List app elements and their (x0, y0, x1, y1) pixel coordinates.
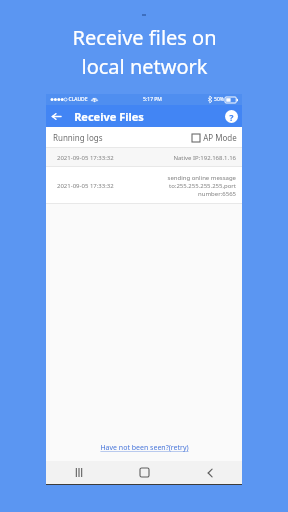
staticText: CLAUDE (68, 96, 88, 103)
staticText: 50% (214, 96, 224, 103)
staticText: Native IP:192.168.1.16 (173, 154, 236, 162)
staticText: 2021-09-05 17:33:32 (57, 154, 114, 162)
staticText: Receive files on (72, 24, 217, 51)
button[interactable]: Back (46, 106, 66, 126)
staticText: number:6565 (198, 190, 236, 198)
button[interactable]: AP Mode (192, 132, 237, 143)
staticText: local network (81, 53, 208, 80)
button[interactable]: Have not been seen?(retry) (94, 441, 195, 455)
staticText: sending online message (167, 174, 236, 182)
staticText: Have not been seen?(retry) (100, 443, 189, 453)
staticText: to:255.255.255.255,port (169, 182, 236, 190)
button[interactable]: Recent apps (46, 461, 112, 484)
button[interactable]: 2021-09-05 17:33:32 (46, 167, 242, 204)
staticText: Running logs (53, 132, 103, 143)
staticText: ? (229, 111, 234, 123)
button[interactable]: 2021-09-05 17:33:32 (46, 148, 242, 167)
staticText: 2021-09-05 17:33:32 (57, 182, 114, 190)
button[interactable]: Back (177, 461, 242, 484)
button[interactable]: Help (223, 108, 239, 124)
button[interactable]: Home (112, 461, 177, 484)
staticText: 5:17 PM (143, 96, 162, 103)
staticText: Receive Files (74, 109, 144, 124)
staticText: AP Mode (203, 132, 237, 143)
